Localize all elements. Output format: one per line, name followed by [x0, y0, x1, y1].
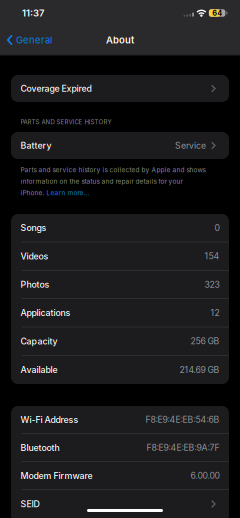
button[interactable]: General: [6, 34, 52, 46]
staticText: SEID: [20, 499, 39, 509]
staticText: information on the status and repair det…: [20, 177, 182, 185]
staticText: Parts and service history is collected b…: [20, 166, 205, 174]
staticText: 154: [204, 251, 219, 261]
staticText: Photos: [20, 279, 49, 290]
staticText: 64: [212, 9, 222, 17]
staticText: 0: [214, 223, 219, 233]
staticText: F8:E9:4E:EB:54:6B: [145, 414, 219, 425]
staticText: Service: [175, 140, 206, 151]
staticText: General: [16, 34, 52, 46]
staticText: 214.69 GB: [179, 365, 219, 375]
staticText: 256 GB: [190, 336, 219, 346]
button[interactable]: Battery: [11, 132, 229, 159]
staticText: Applications: [20, 307, 70, 318]
staticText: Capacity: [20, 336, 57, 346]
button[interactable]: Learn more...: [46, 189, 89, 197]
staticText: 6.00.00: [190, 470, 219, 481]
button[interactable]: SEID: [11, 490, 229, 518]
staticText: Videos: [20, 251, 48, 261]
staticText: PARTS AND SERVICE HISTORY: [20, 118, 111, 126]
staticText: Bluetooth: [20, 442, 59, 453]
staticText: About: [106, 34, 134, 46]
button[interactable]: Coverage Expired: [11, 75, 229, 102]
staticText: Coverage Expired: [20, 83, 91, 94]
staticText: Battery: [20, 140, 51, 151]
staticText: Available: [20, 364, 57, 375]
staticText: 11:37: [22, 7, 44, 19]
staticText: iPhone.: [20, 189, 46, 197]
staticText: Wi-Fi Address: [20, 414, 78, 425]
staticText: 12: [210, 308, 219, 318]
staticText: 323: [204, 279, 219, 290]
staticText: Learn more...: [46, 189, 89, 197]
staticText: Modem Firmware: [20, 470, 92, 481]
staticText: Songs: [20, 222, 46, 233]
staticText: F8:E9:4E:EB:9A:7F: [146, 442, 219, 453]
